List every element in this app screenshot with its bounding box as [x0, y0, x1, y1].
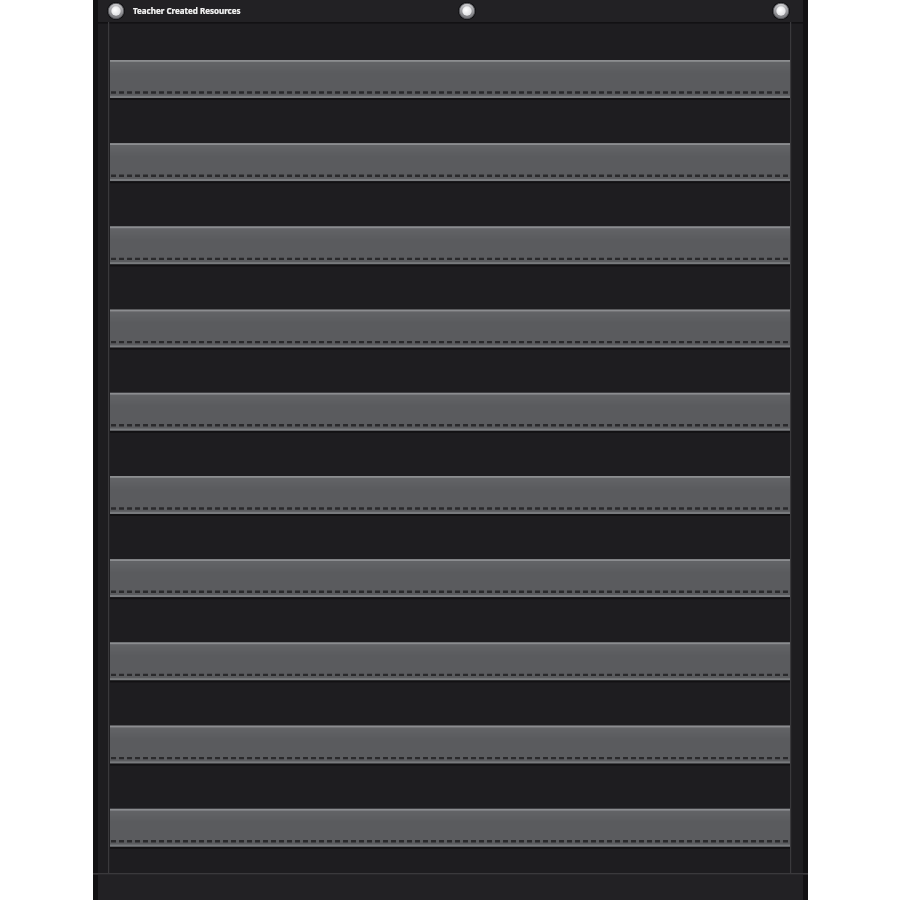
- button[interactable]: Hanging grommet center: [458, 2, 476, 20]
- button[interactable]: Hanging grommet left: [107, 2, 125, 20]
- button[interactable]: Teacher Created Resources pocket chart: [0, 0, 900, 900]
- staticText: Teacher Created Resources: [133, 5, 241, 16]
- button[interactable]: Hanging grommet right: [772, 2, 790, 20]
